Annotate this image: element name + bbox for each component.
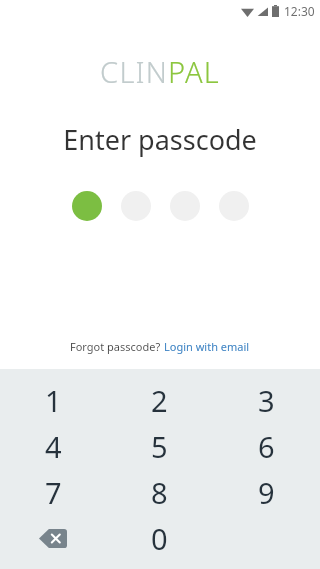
staticText: 4	[45, 427, 62, 466]
button[interactable]: Login with email	[164, 339, 250, 354]
staticText: 8	[151, 473, 168, 512]
staticText: Enter passcode	[63, 121, 257, 158]
button[interactable]: 6	[213, 423, 320, 469]
staticText: CLINPAL	[100, 52, 220, 86]
button[interactable]: 5	[106, 423, 213, 469]
staticText: 6	[258, 427, 275, 466]
staticText: 3	[258, 381, 275, 420]
staticText: 9	[258, 473, 275, 512]
button[interactable]: 4	[0, 423, 106, 469]
button[interactable]: 1	[0, 377, 106, 423]
staticText: 5	[151, 427, 168, 466]
button[interactable]: 2	[106, 377, 213, 423]
button[interactable]: 7	[0, 469, 106, 515]
staticText: 12:30	[284, 3, 315, 19]
button[interactable]: 8	[106, 469, 213, 515]
staticText: 7	[45, 473, 62, 512]
button[interactable]: Backspace	[0, 515, 106, 561]
staticText: Forgot passcode?	[70, 339, 164, 354]
staticText: 0	[151, 519, 168, 558]
button[interactable]: 0	[106, 515, 213, 561]
staticText: 1	[45, 381, 62, 420]
staticText: Login with email	[164, 339, 250, 354]
staticText: 2	[151, 381, 168, 420]
button[interactable]: 3	[213, 377, 320, 423]
button[interactable]: 9	[213, 469, 320, 515]
